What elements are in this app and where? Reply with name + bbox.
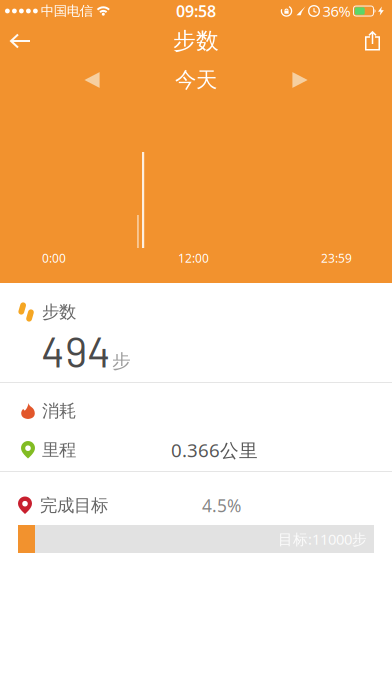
staticText: 09:58 (176, 0, 216, 22)
staticText: 494 (41, 325, 111, 376)
button[interactable]: Previous day (0, 71, 100, 88)
staticText: 完成目标 (40, 495, 108, 516)
staticText: 23:59 (321, 250, 352, 266)
staticText: 里程 (42, 439, 76, 461)
staticText: 步 (112, 350, 131, 373)
staticText: 0.366公里 (171, 438, 258, 462)
staticText: 36% (322, 1, 350, 21)
staticText: 4.5% (202, 494, 241, 517)
staticText: 步数 (173, 27, 219, 55)
staticText: 消耗 (42, 400, 76, 422)
button[interactable]: Share (365, 31, 392, 50)
staticText: 0:00 (42, 250, 66, 266)
staticText: 步数 (42, 301, 76, 323)
staticText: 今天 (175, 67, 217, 93)
staticText: 目标:11000步 (278, 529, 367, 549)
staticText: 12:00 (178, 250, 209, 266)
staticText: 中国电信 (41, 3, 93, 19)
button[interactable]: Next day (292, 71, 392, 88)
button[interactable]: Back (0, 34, 31, 47)
